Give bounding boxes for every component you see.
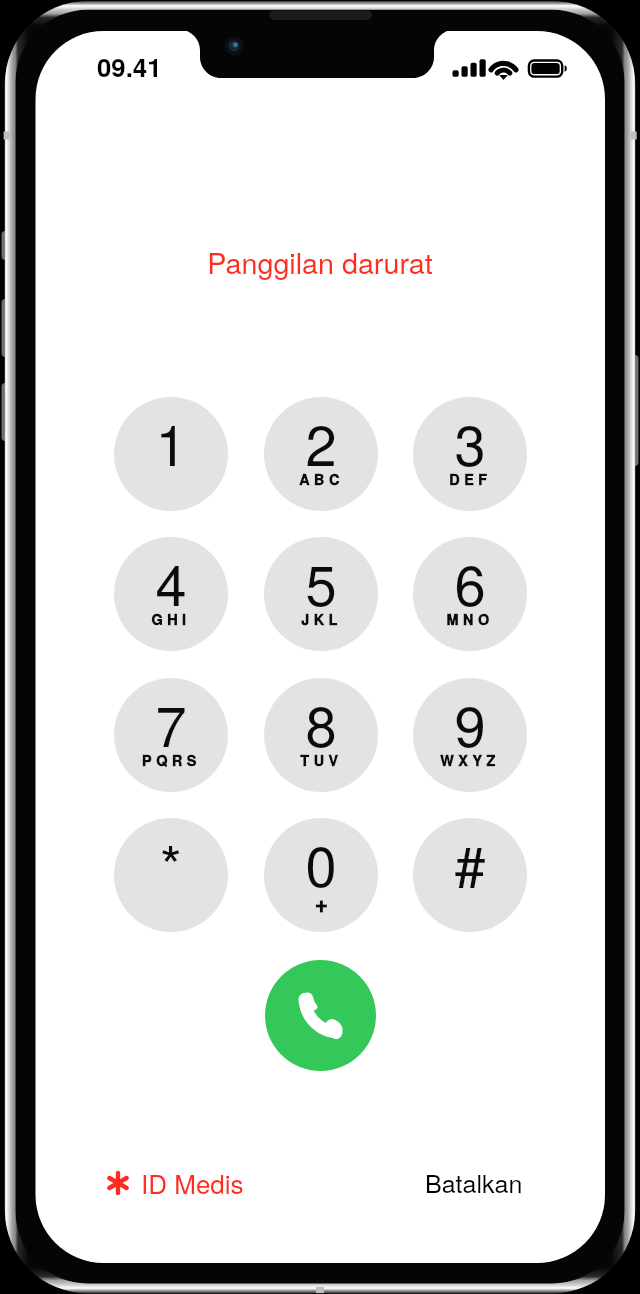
staticText: 0 (305, 823, 337, 903)
staticText: 2 (305, 402, 337, 482)
staticText: 7 (155, 683, 187, 763)
other: Status (440, 50, 575, 90)
staticText: 5 (305, 542, 337, 622)
staticText: JKL (301, 609, 342, 630)
button[interactable]: * (114, 818, 228, 932)
button[interactable]: 5 (264, 537, 378, 651)
staticText: * (160, 823, 182, 903)
staticText: + (315, 887, 328, 919)
staticText: ID Medis (141, 1164, 244, 1201)
staticText: 1 (155, 402, 187, 482)
staticText: Batalkan (425, 1164, 523, 1200)
staticText: 8 (305, 683, 337, 763)
staticText: 9 (454, 683, 486, 763)
staticText: 4 (155, 542, 187, 622)
button[interactable]: 2 (264, 397, 378, 511)
staticText: GHI (151, 609, 191, 630)
button[interactable]: 0 (264, 818, 378, 932)
staticText: DEF (449, 469, 492, 490)
button[interactable]: 6 (413, 537, 527, 651)
staticText: TUV (300, 750, 343, 771)
staticText: 6 (454, 542, 486, 622)
button[interactable]: # (413, 818, 527, 932)
staticText: # (454, 823, 486, 903)
staticText: 3 (454, 402, 486, 482)
button[interactable]: Batalkan (425, 1164, 523, 1200)
button[interactable]: Call (265, 960, 376, 1071)
button[interactable]: ID Medis (108, 1164, 244, 1201)
staticText: WXYZ (440, 750, 500, 771)
button[interactable]: 4 (114, 537, 228, 651)
staticText: PQRS (142, 750, 201, 771)
button[interactable]: 3 (413, 397, 527, 511)
button[interactable]: 8 (264, 678, 378, 792)
staticText: MNO (446, 609, 494, 630)
staticText: ABC (299, 469, 344, 490)
button[interactable]: 9 (413, 678, 527, 792)
button[interactable]: 1 (114, 397, 228, 511)
button[interactable]: 7 (114, 678, 228, 792)
staticText: Panggilan darurat (0, 241, 640, 282)
staticText: 09.41 (97, 48, 162, 85)
